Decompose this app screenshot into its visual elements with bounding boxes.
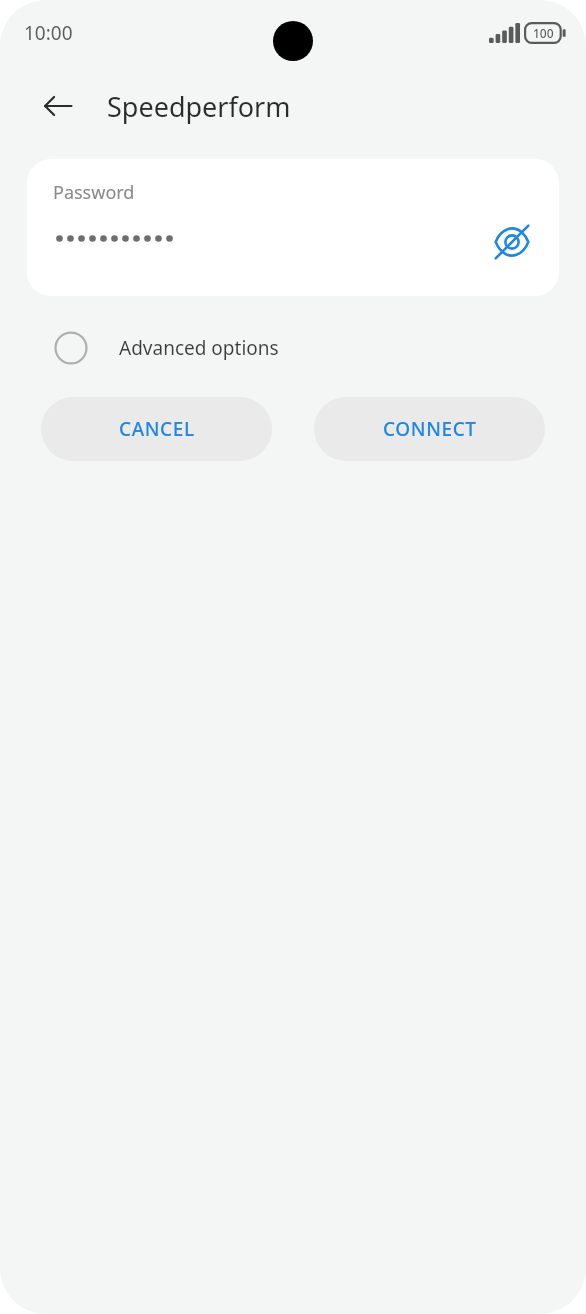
button[interactable]: CANCEL bbox=[41, 397, 272, 461]
button[interactable]: Advanced options bbox=[0, 321, 586, 375]
button[interactable]: Back bbox=[30, 78, 86, 134]
staticText: CONNECT bbox=[383, 416, 477, 442]
staticText: Speedperform bbox=[107, 88, 291, 125]
staticText: Password bbox=[53, 180, 135, 205]
button[interactable]: Password bbox=[27, 159, 559, 296]
button[interactable]: Hide password bbox=[487, 217, 537, 267]
staticText: 100 bbox=[533, 25, 554, 41]
staticText: 10:00 bbox=[24, 20, 73, 46]
button[interactable]: CONNECT bbox=[314, 397, 545, 461]
staticText: CANCEL bbox=[119, 416, 195, 442]
staticText: Advanced options bbox=[119, 335, 279, 361]
